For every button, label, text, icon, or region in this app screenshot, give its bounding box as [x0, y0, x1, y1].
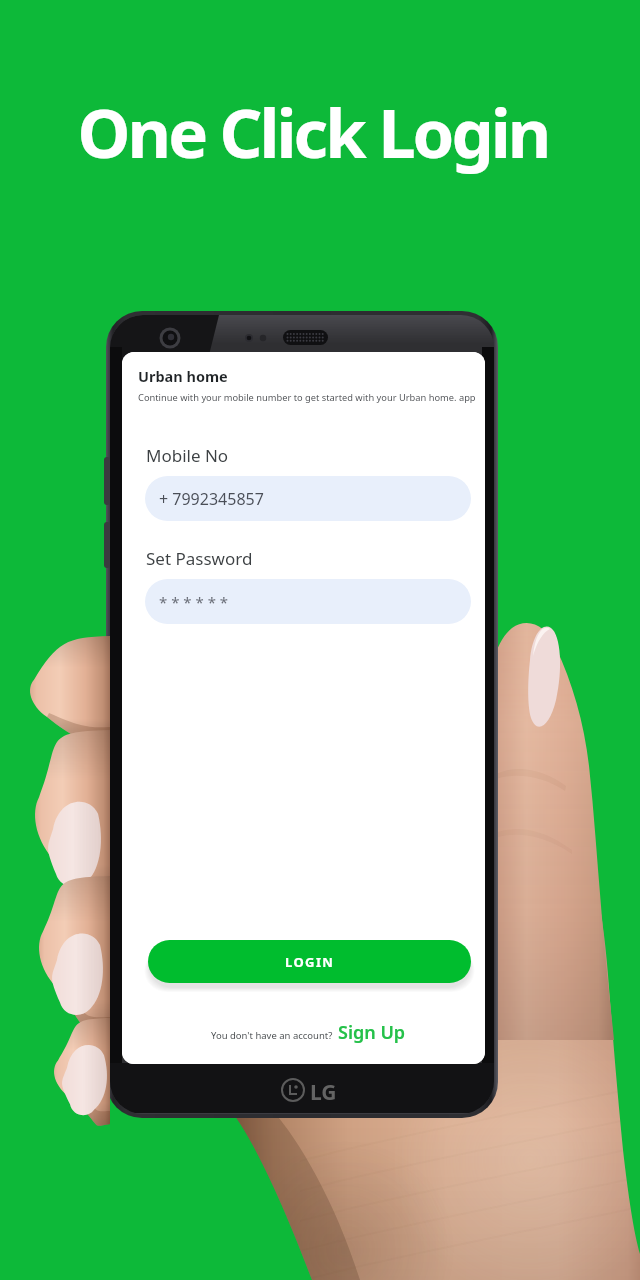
staticText: Set Password	[146, 547, 253, 570]
staticText: * * * * * *	[159, 592, 229, 612]
staticText: + 7992345857	[159, 488, 264, 510]
staticText: Sign Up	[338, 1020, 406, 1045]
button[interactable]: + 7992345857	[145, 476, 471, 521]
staticText: One Click Login	[0, 86, 633, 177]
staticText: You don't have an account?	[211, 1029, 333, 1042]
staticText: LG	[310, 1078, 337, 1107]
staticText: Mobile No	[146, 444, 229, 467]
button[interactable]: LOGIN	[148, 940, 471, 983]
button[interactable]: Sign Up	[333, 1020, 406, 1045]
button[interactable]: * * * * * *	[145, 579, 471, 624]
staticText: LOGIN	[285, 953, 335, 971]
staticText: Urban home	[138, 366, 228, 386]
staticText: Continue with your mobile number to get …	[138, 391, 483, 404]
